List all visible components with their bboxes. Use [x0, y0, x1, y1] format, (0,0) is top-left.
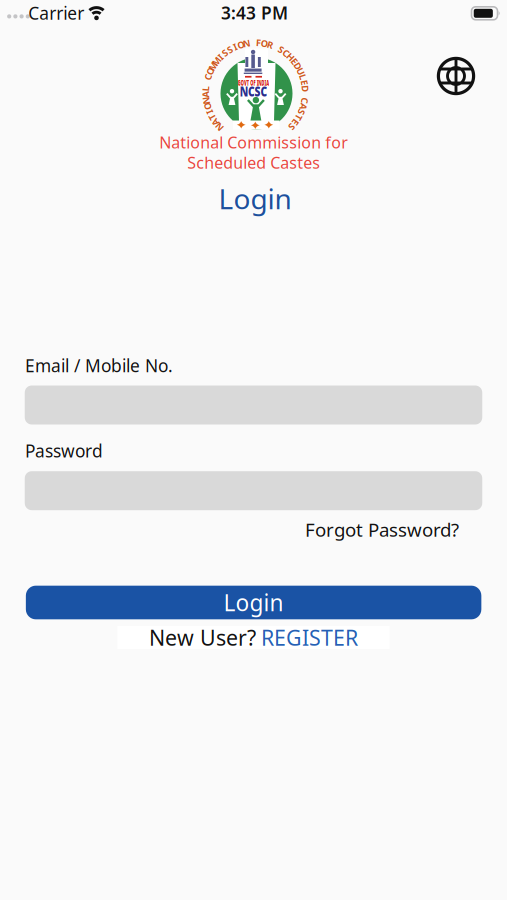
staticText: D: [301, 82, 309, 96]
staticText: C: [301, 93, 308, 108]
staticText: [304, 87, 307, 102]
button[interactable]: New User?: [117, 626, 389, 649]
staticText: E: [301, 76, 307, 90]
staticText: S: [278, 42, 284, 57]
staticText: Scheduled Castes: [187, 152, 320, 173]
staticText: A: [212, 115, 219, 129]
staticText: F: [255, 35, 261, 50]
staticText: E: [293, 115, 299, 129]
staticText: O: [203, 99, 211, 113]
staticText: O: [206, 64, 214, 78]
button[interactable]: Login: [26, 586, 481, 619]
staticText: S: [289, 120, 295, 134]
staticText: U: [297, 64, 305, 78]
staticText: N: [215, 120, 224, 134]
staticText: A: [300, 99, 307, 113]
staticText: H: [286, 50, 294, 64]
staticText: O: [237, 38, 245, 52]
staticText: [205, 76, 208, 90]
staticText: I: [218, 50, 222, 64]
staticText: Forgot Password?: [305, 517, 459, 542]
staticText: O: [260, 36, 268, 50]
staticText: L: [300, 70, 306, 84]
staticText: R: [267, 38, 274, 52]
staticText: L: [203, 82, 209, 96]
staticText: NCSC: [230, 79, 276, 102]
staticText: Login: [224, 587, 284, 617]
staticText: N: [202, 93, 211, 108]
staticText: GOVT OF INDIA: [195, 73, 311, 93]
staticText: National Commission for: [159, 132, 348, 153]
button[interactable]: Forgot Password?: [25, 517, 459, 542]
staticText: T: [209, 110, 215, 124]
staticText: Login: [218, 180, 291, 217]
staticText: 3:43 PM: [221, 1, 288, 24]
staticText: Carrier: [28, 1, 84, 24]
staticText: [251, 35, 254, 50]
staticText: S: [222, 46, 228, 60]
staticText: I: [233, 40, 237, 54]
staticText: S: [227, 42, 233, 57]
staticText: REGISTER: [261, 623, 358, 652]
staticText: T: [296, 110, 302, 124]
staticText: A: [202, 87, 209, 102]
staticText: S: [298, 105, 304, 119]
staticText: I: [207, 105, 211, 119]
staticText: Password: [25, 439, 103, 462]
staticText: D: [294, 59, 302, 73]
staticText: C: [204, 70, 211, 84]
staticText: E: [291, 54, 297, 68]
staticText: New User?: [149, 623, 256, 652]
staticText: Email / Mobile No.: [25, 354, 173, 377]
button[interactable]: [434, 54, 478, 98]
staticText: C: [282, 46, 289, 60]
staticText: M: [208, 59, 218, 73]
staticText: M: [211, 54, 221, 68]
staticText: N: [242, 36, 251, 50]
